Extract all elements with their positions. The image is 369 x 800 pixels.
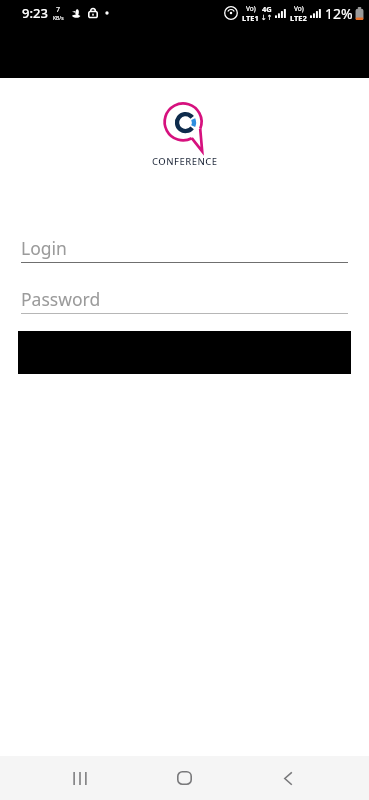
staticText: Password (21, 287, 101, 311)
staticText: Login (21, 236, 67, 260)
staticText: 7 (56, 5, 61, 15)
button[interactable]: Password (21, 287, 348, 314)
staticText: ↓↑ (261, 14, 273, 22)
staticText: LTE1 (242, 13, 259, 23)
staticText: 4G (262, 4, 272, 14)
staticText: Vo) (294, 4, 304, 13)
button[interactable]: Home (156, 756, 212, 800)
staticText: Vo) (246, 4, 256, 13)
staticText: KB/s (53, 15, 64, 22)
button[interactable]: Recents (52, 756, 108, 800)
staticText: 12% (325, 4, 353, 23)
button[interactable]: Back (260, 756, 316, 800)
staticText: 9:23 (22, 4, 48, 22)
button[interactable]: Login (21, 236, 348, 263)
staticText: CONFERENCE (152, 155, 218, 168)
staticText: LTE2 (290, 13, 307, 23)
